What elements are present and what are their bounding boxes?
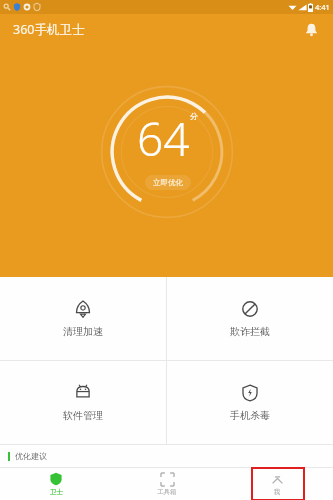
staticText: 工具箱 xyxy=(157,488,177,496)
staticText: 4:41 xyxy=(315,2,330,12)
staticText: 360手机卫士 xyxy=(13,21,85,38)
button[interactable]: 我 xyxy=(222,468,333,500)
button[interactable]: 欺诈拦截 xyxy=(167,277,333,360)
staticText: 分 xyxy=(190,111,198,121)
button[interactable]: 工具箱 xyxy=(111,468,222,500)
staticText: 优化建议 xyxy=(15,451,47,461)
button[interactable]: 手机杀毒 xyxy=(167,361,333,444)
button[interactable]: 软件管理 xyxy=(0,361,166,444)
button[interactable]: 立即优化 xyxy=(145,175,191,190)
staticText: 清理加速 xyxy=(63,325,103,338)
button[interactable]: 卫士 xyxy=(0,468,111,500)
staticText: 软件管理 xyxy=(63,409,103,422)
staticText: 欺诈拦截 xyxy=(230,325,270,338)
button[interactable]: 清理加速 xyxy=(0,277,166,360)
button[interactable]: 优化建议 xyxy=(0,445,333,467)
staticText: 卫士 xyxy=(50,488,63,496)
staticText: 立即优化 xyxy=(153,178,183,187)
staticText: 我 xyxy=(274,488,281,496)
staticText: 64 xyxy=(137,107,190,170)
button[interactable]: Notifications xyxy=(299,17,323,41)
staticText: 手机杀毒 xyxy=(230,409,270,422)
